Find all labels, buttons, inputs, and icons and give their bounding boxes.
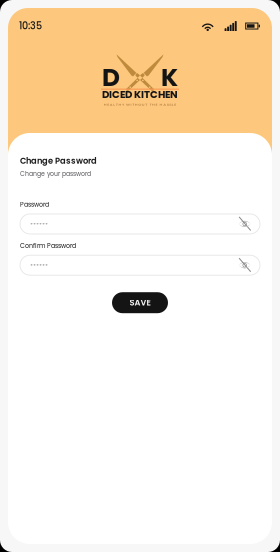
staticText: Change your password	[20, 170, 91, 178]
staticText: DICED KITCHEN	[102, 87, 178, 101]
staticText: Password	[20, 200, 49, 209]
staticText: Confirm Password	[20, 241, 76, 250]
staticText: 10:35	[19, 19, 42, 33]
staticText: HEALTHY WITHOUT THE HASSLE	[104, 101, 176, 107]
staticText: Change Password	[20, 155, 97, 167]
staticText: ••••••	[30, 219, 48, 229]
button[interactable]: SAVE	[112, 292, 168, 313]
staticText: ••••••	[30, 260, 48, 270]
staticText: D	[102, 60, 120, 95]
staticText: SAVE	[129, 297, 150, 308]
staticText: K	[161, 60, 178, 95]
